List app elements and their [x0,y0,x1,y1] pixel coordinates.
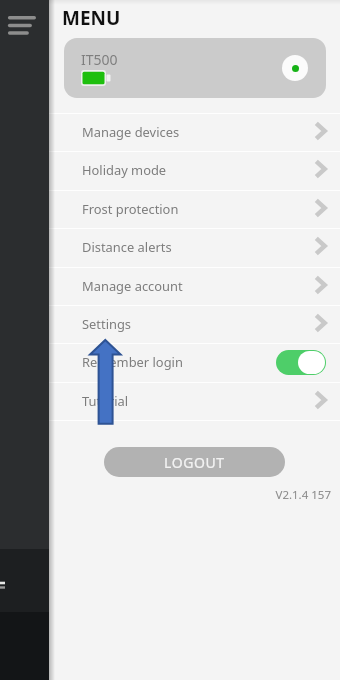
staticText: IT500 [81,50,118,69]
staticText: Frost protection [82,200,179,218]
staticText: Tutorial [82,392,129,410]
button[interactable]: Manage devices [49,114,340,151]
staticText: LOGOUT [164,453,225,472]
button[interactable]: Remember login, on [276,350,326,375]
button[interactable]: Remember login [49,344,340,381]
staticText: MENU [62,5,121,31]
button[interactable]: LOGOUT [104,447,285,477]
button[interactable]: Distance alerts [49,229,340,266]
button[interactable]: Frost protection [49,191,340,228]
staticText: Distance alerts [82,238,172,256]
button[interactable]: Settings [49,306,340,343]
button[interactable]: IT500 [64,38,326,98]
staticText: Holiday mode [82,161,167,179]
button[interactable]: Open navigation menu [4,10,44,44]
button[interactable]: Tutorial [49,383,340,420]
button[interactable]: Holiday mode [49,152,340,189]
staticText: V2.1.4 157 [0,487,331,503]
staticText: Manage account [82,277,183,295]
button[interactable]: Manage account [49,268,340,305]
staticText: Manage devices [82,123,180,141]
staticText: Settings [82,315,132,333]
staticText: Remember login [82,353,183,371]
